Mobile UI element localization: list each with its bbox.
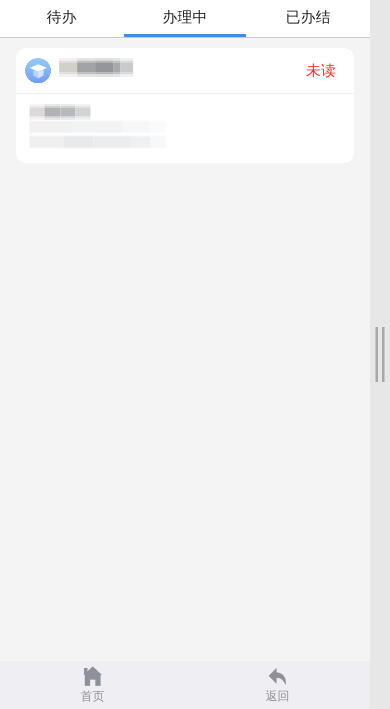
staticText: 返回 [265,689,289,703]
staticText: 未读 [306,61,336,79]
button[interactable]: 待办 [0,0,123,37]
button[interactable]: 首页 [0,661,185,709]
staticText: 首页 [80,689,104,704]
button[interactable]: 办理中 [123,0,247,37]
button[interactable]: 已办结 [247,0,370,37]
staticText: 待办 [47,8,77,26]
staticText: 已办结 [286,8,331,26]
button[interactable]: 返回 [185,661,370,709]
staticText: 办理中 [162,8,207,26]
